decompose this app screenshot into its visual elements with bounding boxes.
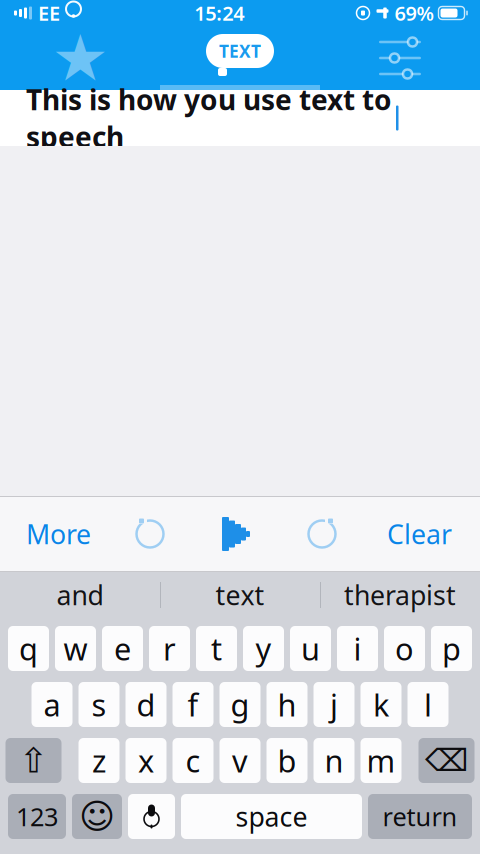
button[interactable]: Dictation bbox=[128, 794, 175, 839]
staticText: n bbox=[324, 740, 343, 781]
button[interactable]: Emoji bbox=[72, 794, 122, 839]
button[interactable]: i bbox=[337, 626, 378, 671]
button[interactable]: Play bbox=[190, 496, 282, 572]
button[interactable]: text bbox=[160, 572, 320, 618]
button[interactable]: w bbox=[55, 626, 96, 671]
staticText: d bbox=[136, 684, 155, 725]
button[interactable]: u bbox=[290, 626, 331, 671]
button[interactable]: j bbox=[313, 682, 354, 727]
button[interactable]: s bbox=[78, 682, 119, 727]
staticText: k bbox=[373, 684, 389, 725]
staticText: ⌫ bbox=[425, 743, 468, 778]
button[interactable]: Repeat forward bbox=[282, 496, 362, 572]
button[interactable]: Clear bbox=[362, 496, 480, 572]
button[interactable]: r bbox=[149, 626, 190, 671]
staticText: a bbox=[43, 684, 60, 725]
staticText: q bbox=[19, 628, 38, 669]
staticText: 69% bbox=[394, 0, 434, 26]
button[interactable]: Favourites bbox=[0, 26, 160, 90]
button[interactable]: k bbox=[360, 682, 401, 727]
staticText: therapist bbox=[344, 577, 456, 613]
button[interactable]: m bbox=[360, 738, 401, 783]
staticText: t bbox=[211, 628, 222, 669]
button[interactable]: l bbox=[407, 682, 448, 727]
staticText: ★ bbox=[51, 22, 108, 94]
button[interactable]: space bbox=[181, 794, 362, 839]
button[interactable]: Delete bbox=[418, 738, 474, 783]
staticText: p bbox=[442, 628, 461, 669]
staticText: return bbox=[382, 800, 457, 833]
button[interactable]: o bbox=[384, 626, 425, 671]
button[interactable]: c bbox=[172, 738, 213, 783]
button[interactable]: f bbox=[172, 682, 213, 727]
button[interactable]: Settings bbox=[320, 26, 480, 90]
button[interactable]: p bbox=[431, 626, 472, 671]
button[interactable]: t bbox=[196, 626, 237, 671]
staticText: c bbox=[185, 740, 200, 781]
button[interactable]: y bbox=[243, 626, 284, 671]
staticText: r bbox=[163, 628, 176, 669]
button[interactable]: g bbox=[219, 682, 260, 727]
staticText: h bbox=[277, 684, 296, 725]
button[interactable]: x bbox=[125, 738, 166, 783]
staticText: g bbox=[230, 684, 249, 725]
staticText: l bbox=[424, 684, 432, 725]
button[interactable]: Text bbox=[160, 26, 320, 90]
staticText: z bbox=[92, 740, 106, 781]
staticText: v bbox=[232, 740, 248, 781]
staticText: ⇧ bbox=[19, 741, 48, 780]
button[interactable]: b bbox=[266, 738, 307, 783]
staticText: EE bbox=[38, 0, 60, 26]
staticText: u bbox=[301, 628, 320, 669]
staticText: o bbox=[395, 628, 414, 669]
staticText: x bbox=[138, 740, 154, 781]
staticText: TEXT bbox=[219, 39, 261, 62]
staticText: m bbox=[366, 740, 395, 781]
staticText: w bbox=[63, 628, 87, 669]
button[interactable]: q bbox=[8, 626, 49, 671]
staticText: space bbox=[235, 799, 307, 834]
staticText: More bbox=[26, 516, 91, 552]
staticText: This is how you use text to speech bbox=[26, 81, 392, 155]
button[interactable]: More bbox=[0, 496, 110, 572]
button[interactable]: 123 bbox=[8, 794, 66, 839]
button[interactable]: v bbox=[219, 738, 260, 783]
button[interactable]: and bbox=[0, 572, 160, 618]
button[interactable]: Repeat bbox=[110, 496, 190, 572]
staticText: Clear bbox=[387, 516, 452, 552]
button[interactable]: Shift bbox=[5, 738, 61, 783]
staticText: and bbox=[56, 577, 103, 613]
staticText: j bbox=[330, 684, 338, 725]
staticText: 15:24 bbox=[194, 0, 244, 26]
staticText: ☺ bbox=[79, 797, 115, 836]
button[interactable]: e bbox=[102, 626, 143, 671]
staticText: y bbox=[255, 628, 271, 669]
staticText: e bbox=[114, 628, 131, 669]
staticText: text bbox=[215, 577, 264, 613]
staticText: f bbox=[187, 684, 198, 725]
staticText: b bbox=[277, 740, 296, 781]
button[interactable]: z bbox=[78, 738, 119, 783]
staticText: 123 bbox=[16, 800, 58, 833]
staticText: s bbox=[91, 684, 106, 725]
button[interactable]: h bbox=[266, 682, 307, 727]
button[interactable]: return bbox=[368, 794, 472, 839]
button[interactable]: d bbox=[125, 682, 166, 727]
button[interactable]: therapist bbox=[320, 572, 480, 618]
button[interactable]: n bbox=[313, 738, 354, 783]
staticText: i bbox=[353, 628, 361, 669]
button[interactable]: a bbox=[31, 682, 72, 727]
